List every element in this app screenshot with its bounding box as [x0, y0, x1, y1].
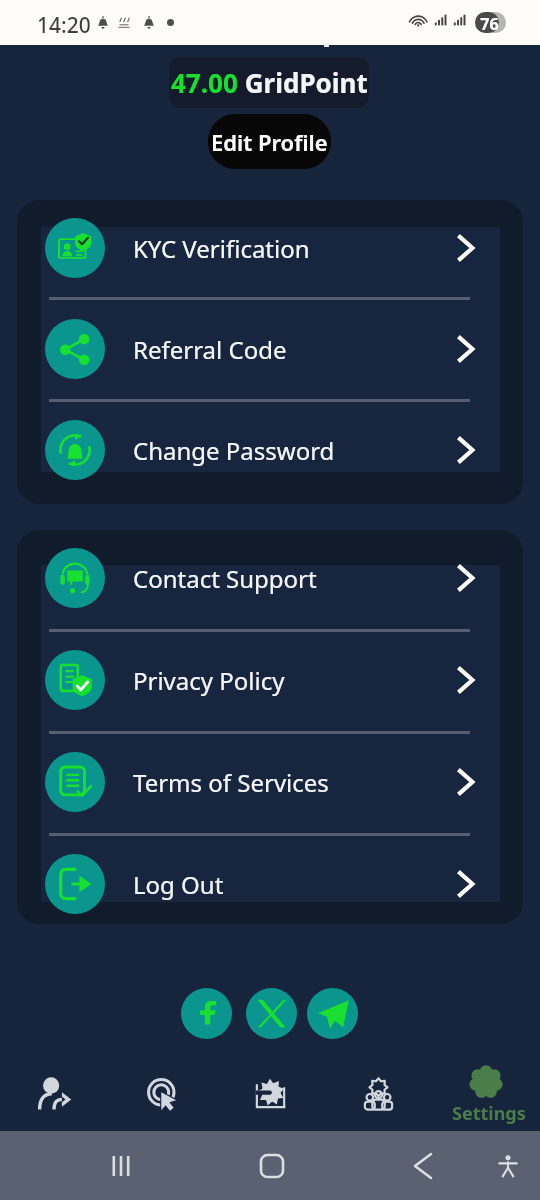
staticText: Referral Code	[133, 333, 287, 366]
button[interactable]	[41, 227, 500, 297]
button[interactable]: Team	[324, 1055, 432, 1131]
staticText: 47.00	[171, 65, 238, 100]
staticText: 76	[477, 13, 502, 35]
button[interactable]: Recent apps	[90, 1145, 152, 1186]
button[interactable]: Refer a friend	[0, 1055, 108, 1131]
staticText: Settings	[452, 1101, 526, 1126]
button[interactable]: Back	[392, 1145, 454, 1186]
button[interactable]	[41, 402, 500, 472]
staticText: Contact Support	[133, 562, 317, 595]
button[interactable]	[41, 632, 500, 731]
button[interactable]	[41, 836, 500, 902]
button[interactable]: Accessibility	[477, 1145, 539, 1186]
button[interactable]: Home	[241, 1145, 303, 1186]
button[interactable]	[41, 300, 500, 399]
staticText: 14:20	[37, 11, 91, 40]
button[interactable]	[41, 734, 500, 833]
button[interactable]: Tasks	[108, 1055, 216, 1131]
button[interactable]: Settings	[432, 1055, 540, 1131]
button[interactable]: Edit Profile	[208, 114, 331, 169]
button[interactable]	[41, 565, 500, 629]
staticText: Privacy Policy	[133, 664, 285, 697]
staticText: Change Password	[133, 434, 335, 467]
staticText: Edit Profile	[211, 127, 328, 157]
button[interactable]: Mining	[216, 1055, 324, 1131]
staticText: KYC Verification	[133, 232, 310, 265]
button[interactable]: X	[246, 988, 297, 1039]
staticText: Log Out	[133, 868, 224, 901]
button[interactable]: Telegram	[307, 988, 358, 1039]
staticText: GridPoint	[238, 65, 368, 100]
button[interactable]: 47.00	[169, 57, 369, 108]
button[interactable]: Facebook	[181, 988, 232, 1039]
staticText: Terms of Services	[133, 766, 329, 799]
